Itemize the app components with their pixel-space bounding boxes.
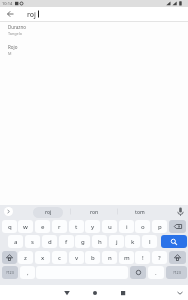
staticText: v	[75, 254, 79, 262]
button[interactable]: d	[42, 235, 57, 248]
button[interactable]: !	[135, 251, 150, 264]
button[interactable]: e	[35, 220, 50, 233]
staticText: y	[91, 223, 95, 231]
staticText: ?123	[173, 270, 181, 275]
staticText: d	[48, 238, 52, 246]
staticText: ,	[27, 269, 29, 277]
staticText: m	[124, 254, 130, 262]
button[interactable]: ?123	[166, 266, 187, 279]
staticText: ?	[158, 254, 161, 262]
staticText: a	[14, 238, 18, 246]
button[interactable]: ,	[20, 266, 35, 279]
button[interactable]: u	[102, 220, 117, 233]
button[interactable]: roj	[33, 207, 63, 218]
staticText: x	[41, 254, 45, 262]
button[interactable]: .	[148, 266, 164, 279]
button[interactable]	[161, 235, 187, 248]
button[interactable]: r	[52, 220, 67, 233]
button[interactable]: h	[92, 235, 107, 248]
button[interactable]	[62, 285, 125, 300]
staticText: !	[142, 254, 144, 262]
button[interactable]: v	[69, 251, 84, 264]
staticText: g	[81, 238, 85, 246]
staticText: k	[131, 238, 135, 246]
staticText: o	[141, 223, 145, 231]
button[interactable]: i	[119, 220, 134, 233]
button[interactable]: l	[142, 235, 157, 248]
button[interactable]: y	[85, 220, 100, 233]
button[interactable]: g	[75, 235, 90, 248]
staticText: j	[116, 238, 118, 246]
button[interactable]: ?	[152, 251, 167, 264]
button[interactable]	[169, 251, 186, 264]
staticText: tom	[135, 209, 145, 216]
button[interactable]: ?123	[2, 266, 18, 279]
button[interactable]: z	[18, 251, 33, 264]
staticText: c	[58, 254, 61, 262]
staticText: roj	[45, 209, 52, 216]
button[interactable]: k	[125, 235, 140, 248]
staticText: q	[8, 223, 12, 231]
button[interactable]: b	[85, 251, 100, 264]
staticText: e	[41, 223, 45, 231]
button[interactable]: s	[25, 235, 40, 248]
button[interactable]	[130, 266, 146, 279]
button[interactable]: f	[59, 235, 74, 248]
button[interactable]: n	[102, 251, 117, 264]
button[interactable]: x	[35, 251, 50, 264]
button[interactable]: tom	[128, 207, 152, 218]
staticText: Rojo	[8, 44, 18, 50]
staticText: roj	[27, 10, 36, 20]
button[interactable]	[125, 285, 188, 300]
button[interactable]: a	[8, 235, 23, 248]
button[interactable]: q	[2, 220, 17, 233]
staticText: h	[98, 238, 102, 246]
staticText: t	[75, 223, 78, 231]
staticText: z	[24, 254, 27, 262]
staticText: 10:14	[2, 1, 13, 6]
staticText: n	[108, 254, 112, 262]
button[interactable]: Durazno	[0, 22, 188, 36]
staticText: i	[126, 223, 128, 231]
button[interactable]: j	[109, 235, 124, 248]
button[interactable]: o	[135, 220, 150, 233]
staticText: l	[149, 238, 151, 246]
staticText: M	[8, 51, 12, 56]
staticText: .	[155, 269, 157, 277]
button[interactable]	[169, 220, 186, 233]
staticText: Tangelo	[8, 31, 23, 36]
button[interactable]	[2, 251, 17, 264]
button[interactable]: p	[152, 220, 167, 233]
staticText: s	[31, 238, 34, 246]
button[interactable]: t	[69, 220, 84, 233]
button[interactable]: Rojo	[0, 42, 188, 56]
button[interactable]: ron	[82, 207, 106, 218]
staticText: u	[108, 223, 112, 231]
staticText: b	[91, 254, 95, 262]
button[interactable]: m	[119, 251, 134, 264]
button[interactable]: w	[18, 220, 33, 233]
staticText: w	[23, 223, 28, 231]
staticText: p	[158, 223, 162, 231]
button[interactable]: c	[52, 251, 67, 264]
staticText: f	[65, 238, 68, 246]
button[interactable]: roj	[0, 7, 188, 21]
staticText: r	[58, 223, 61, 231]
staticText: ron	[90, 209, 99, 216]
staticText: Durazno	[8, 24, 26, 30]
staticText: ?123	[6, 270, 14, 275]
